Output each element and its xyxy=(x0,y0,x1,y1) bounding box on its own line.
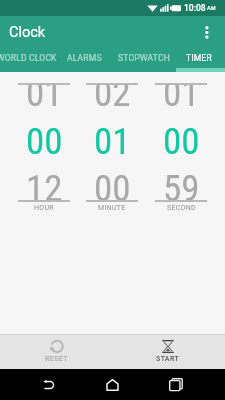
button[interactable]: TIMER xyxy=(174,48,223,68)
staticText: WORLD CLOCK xyxy=(0,53,57,63)
button[interactable]: RESET xyxy=(26,334,86,369)
button[interactable]: 01 xyxy=(149,72,213,334)
staticText: START xyxy=(156,355,180,363)
staticText: 02 xyxy=(94,85,131,112)
button[interactable]: STOPWATCH xyxy=(114,48,174,68)
button[interactable] xyxy=(156,369,196,400)
staticText: AM xyxy=(207,5,216,11)
staticText: STOPWATCH xyxy=(118,53,170,63)
button[interactable] xyxy=(92,369,132,400)
staticText: 01 xyxy=(94,120,131,160)
staticText: HOUR xyxy=(34,204,54,212)
staticText: 12 xyxy=(26,167,63,201)
staticText: 01 xyxy=(163,85,200,112)
staticText: 00 xyxy=(94,167,131,201)
staticText: 00 xyxy=(26,120,63,160)
button[interactable]: ALARMS xyxy=(57,48,112,68)
button[interactable]: 02 xyxy=(80,72,144,334)
staticText: Clock xyxy=(9,24,46,41)
staticText: RESET xyxy=(45,355,68,363)
staticText: 01 xyxy=(26,85,63,112)
staticText: SECOND xyxy=(167,204,196,212)
button[interactable]: START xyxy=(138,334,198,369)
button[interactable]: 01 xyxy=(12,72,76,334)
staticText: ALARMS xyxy=(67,53,102,63)
staticText: 00 xyxy=(163,120,200,160)
button[interactable] xyxy=(193,16,225,48)
staticText: 10:08 xyxy=(184,3,206,13)
button[interactable]: WORLD CLOCK xyxy=(0,48,62,68)
staticText: TIMER xyxy=(186,53,212,63)
staticText: 59 xyxy=(163,167,200,201)
staticText: MINUTE xyxy=(98,204,126,212)
button[interactable] xyxy=(29,369,69,400)
